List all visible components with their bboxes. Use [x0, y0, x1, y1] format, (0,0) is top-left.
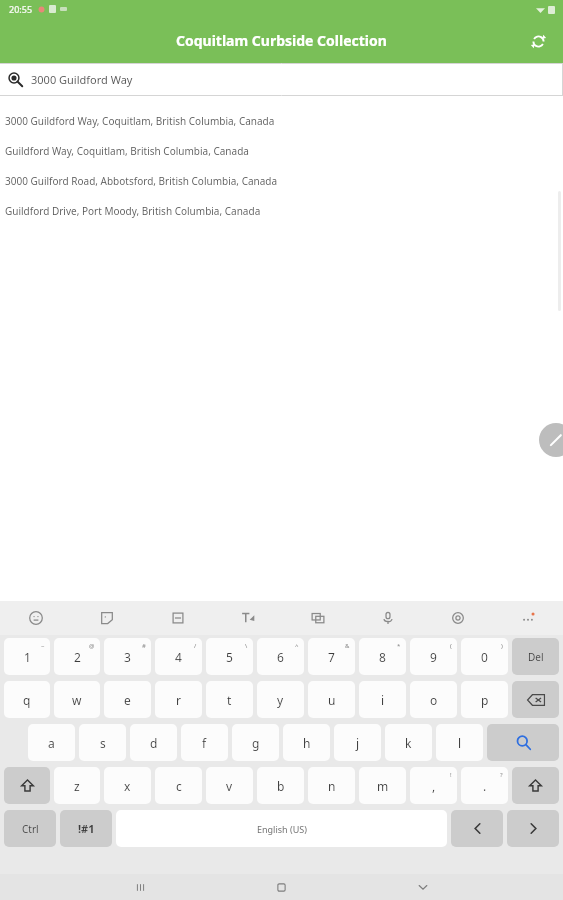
button[interactable]: 5	[206, 638, 253, 675]
staticText: )	[501, 642, 503, 650]
button[interactable]: g	[232, 724, 279, 761]
button[interactable]: 0	[461, 638, 508, 675]
button[interactable]: w	[54, 681, 100, 718]
staticText: p	[481, 692, 489, 708]
staticText: h	[303, 735, 311, 751]
button[interactable]: Home	[211, 874, 352, 900]
button[interactable]: Refresh	[523, 26, 553, 56]
button[interactable]: Ctrl	[4, 810, 56, 847]
button[interactable]: English (US)	[116, 810, 447, 847]
staticText: Coquitlam Curbside Collection	[176, 31, 387, 50]
button[interactable]: Voice input	[353, 601, 423, 635]
staticText: v	[226, 778, 233, 794]
staticText: s	[100, 735, 106, 751]
button[interactable]: 4	[155, 638, 202, 675]
button[interactable]: e	[104, 681, 151, 718]
staticText: 8	[379, 649, 386, 665]
button[interactable]: y	[257, 681, 304, 718]
button[interactable]: z	[54, 767, 100, 804]
staticText: 5	[226, 649, 233, 665]
staticText: r	[176, 692, 181, 708]
button[interactable]: 8	[359, 638, 406, 675]
button[interactable]: Guildford Drive, Port Moody, British Col…	[0, 196, 563, 226]
staticText: *	[397, 642, 401, 650]
button[interactable]: !#1	[60, 810, 112, 847]
button[interactable]: m	[359, 767, 406, 804]
button[interactable]: h	[283, 724, 330, 761]
staticText: ~	[41, 642, 45, 650]
button[interactable]: s	[79, 724, 126, 761]
button[interactable]: 3	[104, 638, 151, 675]
staticText: 3	[124, 649, 131, 665]
staticText: 6	[277, 649, 284, 665]
button[interactable]: Settings	[423, 601, 493, 635]
staticText: y	[277, 692, 284, 708]
button[interactable]: c	[155, 767, 202, 804]
button[interactable]: Hide keyboard	[352, 874, 493, 900]
button[interactable]: k	[385, 724, 432, 761]
button[interactable]: p	[461, 681, 508, 718]
button[interactable]: Del	[512, 638, 559, 675]
staticText: #	[142, 642, 146, 650]
button[interactable]	[512, 767, 559, 804]
button[interactable]	[4, 767, 50, 804]
button[interactable]: Clipboard	[142, 601, 213, 635]
button[interactable]: 7	[308, 638, 355, 675]
staticText: 20:55	[9, 3, 33, 15]
button[interactable]	[512, 681, 559, 718]
staticText: ^	[295, 642, 299, 650]
button[interactable]: f	[181, 724, 228, 761]
button[interactable]	[487, 724, 559, 761]
staticText: w	[72, 692, 82, 708]
button[interactable]: Edit	[539, 423, 563, 457]
button[interactable]: 6	[257, 638, 304, 675]
staticText: 0	[481, 649, 488, 665]
button[interactable]: 9	[410, 638, 457, 675]
button[interactable]: 3000 Guildford Way	[0, 63, 563, 96]
button[interactable]: Recents	[70, 874, 211, 900]
staticText: ?	[500, 771, 503, 779]
button[interactable]: More	[493, 601, 563, 635]
staticText: 4	[175, 649, 182, 665]
staticText: z	[74, 778, 80, 794]
button[interactable]: o	[410, 681, 457, 718]
staticText: o	[430, 692, 438, 708]
button[interactable]	[451, 810, 503, 847]
staticText: 2	[74, 649, 81, 665]
button[interactable]: Stickers	[71, 601, 142, 635]
button[interactable]: d	[130, 724, 177, 761]
button[interactable]: b	[257, 767, 304, 804]
staticText: 3000 Guildford Way	[31, 72, 133, 87]
staticText: 1	[24, 649, 31, 665]
button[interactable]: .	[461, 767, 508, 804]
staticText: /	[194, 642, 197, 650]
staticText: .	[483, 778, 487, 794]
button[interactable]: Handwriting	[213, 601, 283, 635]
button[interactable]	[507, 810, 559, 847]
button[interactable]: u	[308, 681, 355, 718]
button[interactable]: t	[206, 681, 253, 718]
button[interactable]: Guildford Way, Coquitlam, British Columb…	[0, 136, 563, 166]
button[interactable]: ,	[410, 767, 457, 804]
button[interactable]: v	[206, 767, 253, 804]
staticText: e	[124, 692, 131, 708]
staticText: x	[124, 778, 131, 794]
staticText: b	[277, 778, 285, 794]
button[interactable]: Emoji	[0, 601, 71, 635]
button[interactable]: j	[334, 724, 381, 761]
button[interactable]: n	[308, 767, 355, 804]
button[interactable]: r	[155, 681, 202, 718]
button[interactable]: 1	[4, 638, 50, 675]
button[interactable]: 3000 Guilford Road, Abbotsford, British …	[0, 166, 563, 196]
staticText: f	[202, 735, 207, 751]
staticText: ,	[432, 778, 436, 794]
button[interactable]: Translate	[283, 601, 353, 635]
button[interactable]: i	[359, 681, 406, 718]
staticText: j	[356, 735, 360, 751]
button[interactable]: 3000 Guildford Way, Coquitlam, British C…	[0, 106, 563, 136]
button[interactable]: l	[436, 724, 483, 761]
button[interactable]: q	[4, 681, 50, 718]
button[interactable]: a	[28, 724, 75, 761]
button[interactable]: x	[104, 767, 151, 804]
button[interactable]: 2	[54, 638, 100, 675]
